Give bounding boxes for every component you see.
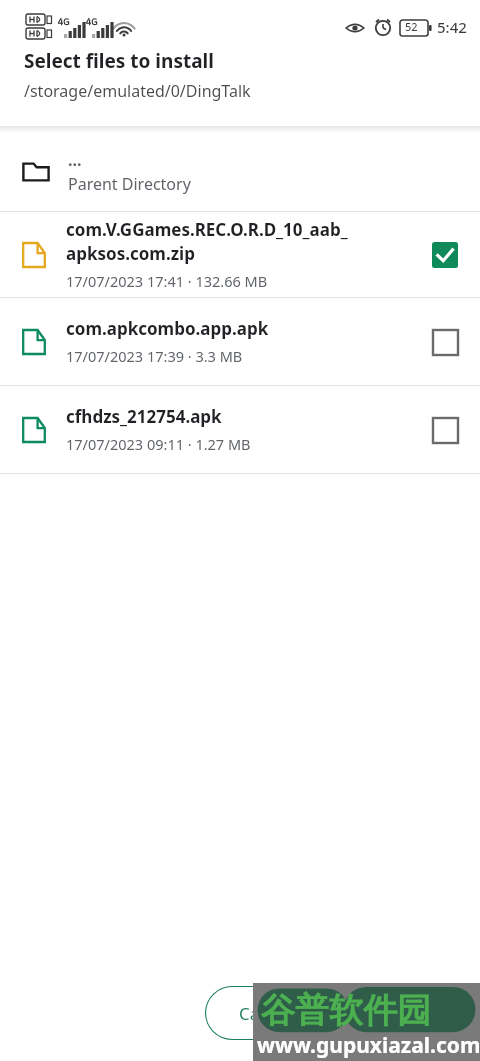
button[interactable]: Not selected — [428, 413, 462, 447]
button[interactable]: com.apkcombo.app.apk — [0, 298, 480, 385]
staticText: cfhdzs_212754.apk — [66, 405, 222, 428]
staticText: /storage/emulated/0/DingTalk — [24, 80, 251, 102]
staticText: Cancel — [239, 1002, 292, 1025]
button[interactable]: Not selected — [428, 325, 462, 359]
button[interactable]: Cancel — [205, 986, 325, 1040]
button[interactable]: Selected — [428, 238, 462, 272]
staticText: com.V.GGames.REC.O.R.D_10_aab_ — [66, 218, 348, 241]
button[interactable]: ... — [0, 133, 480, 211]
staticText: 5:42 — [437, 17, 467, 37]
staticText: ... — [68, 149, 82, 171]
staticText: Parent Directory — [68, 173, 191, 195]
staticText: 谷普软件园 — [261, 989, 431, 1032]
staticText: www.gupuxiazal.com — [257, 1031, 480, 1060]
staticText: Select files to install — [24, 48, 214, 74]
staticText: apksos.com.zip — [66, 242, 195, 265]
staticText: 52 — [405, 19, 418, 34]
staticText: 17/07/2023 09:11 · 1.27 MB — [66, 434, 251, 454]
button[interactable]: cfhdzs_212754.apk — [0, 386, 480, 473]
button[interactable]: com.V.GGames.REC.O.R.D_10_aab_ — [0, 212, 480, 297]
staticText: 17/07/2023 17:39 · 3.3 MB — [66, 346, 243, 366]
staticText: com.apkcombo.app.apk — [66, 317, 269, 340]
staticText: 17/07/2023 17:41 · 132.66 MB — [66, 271, 268, 291]
